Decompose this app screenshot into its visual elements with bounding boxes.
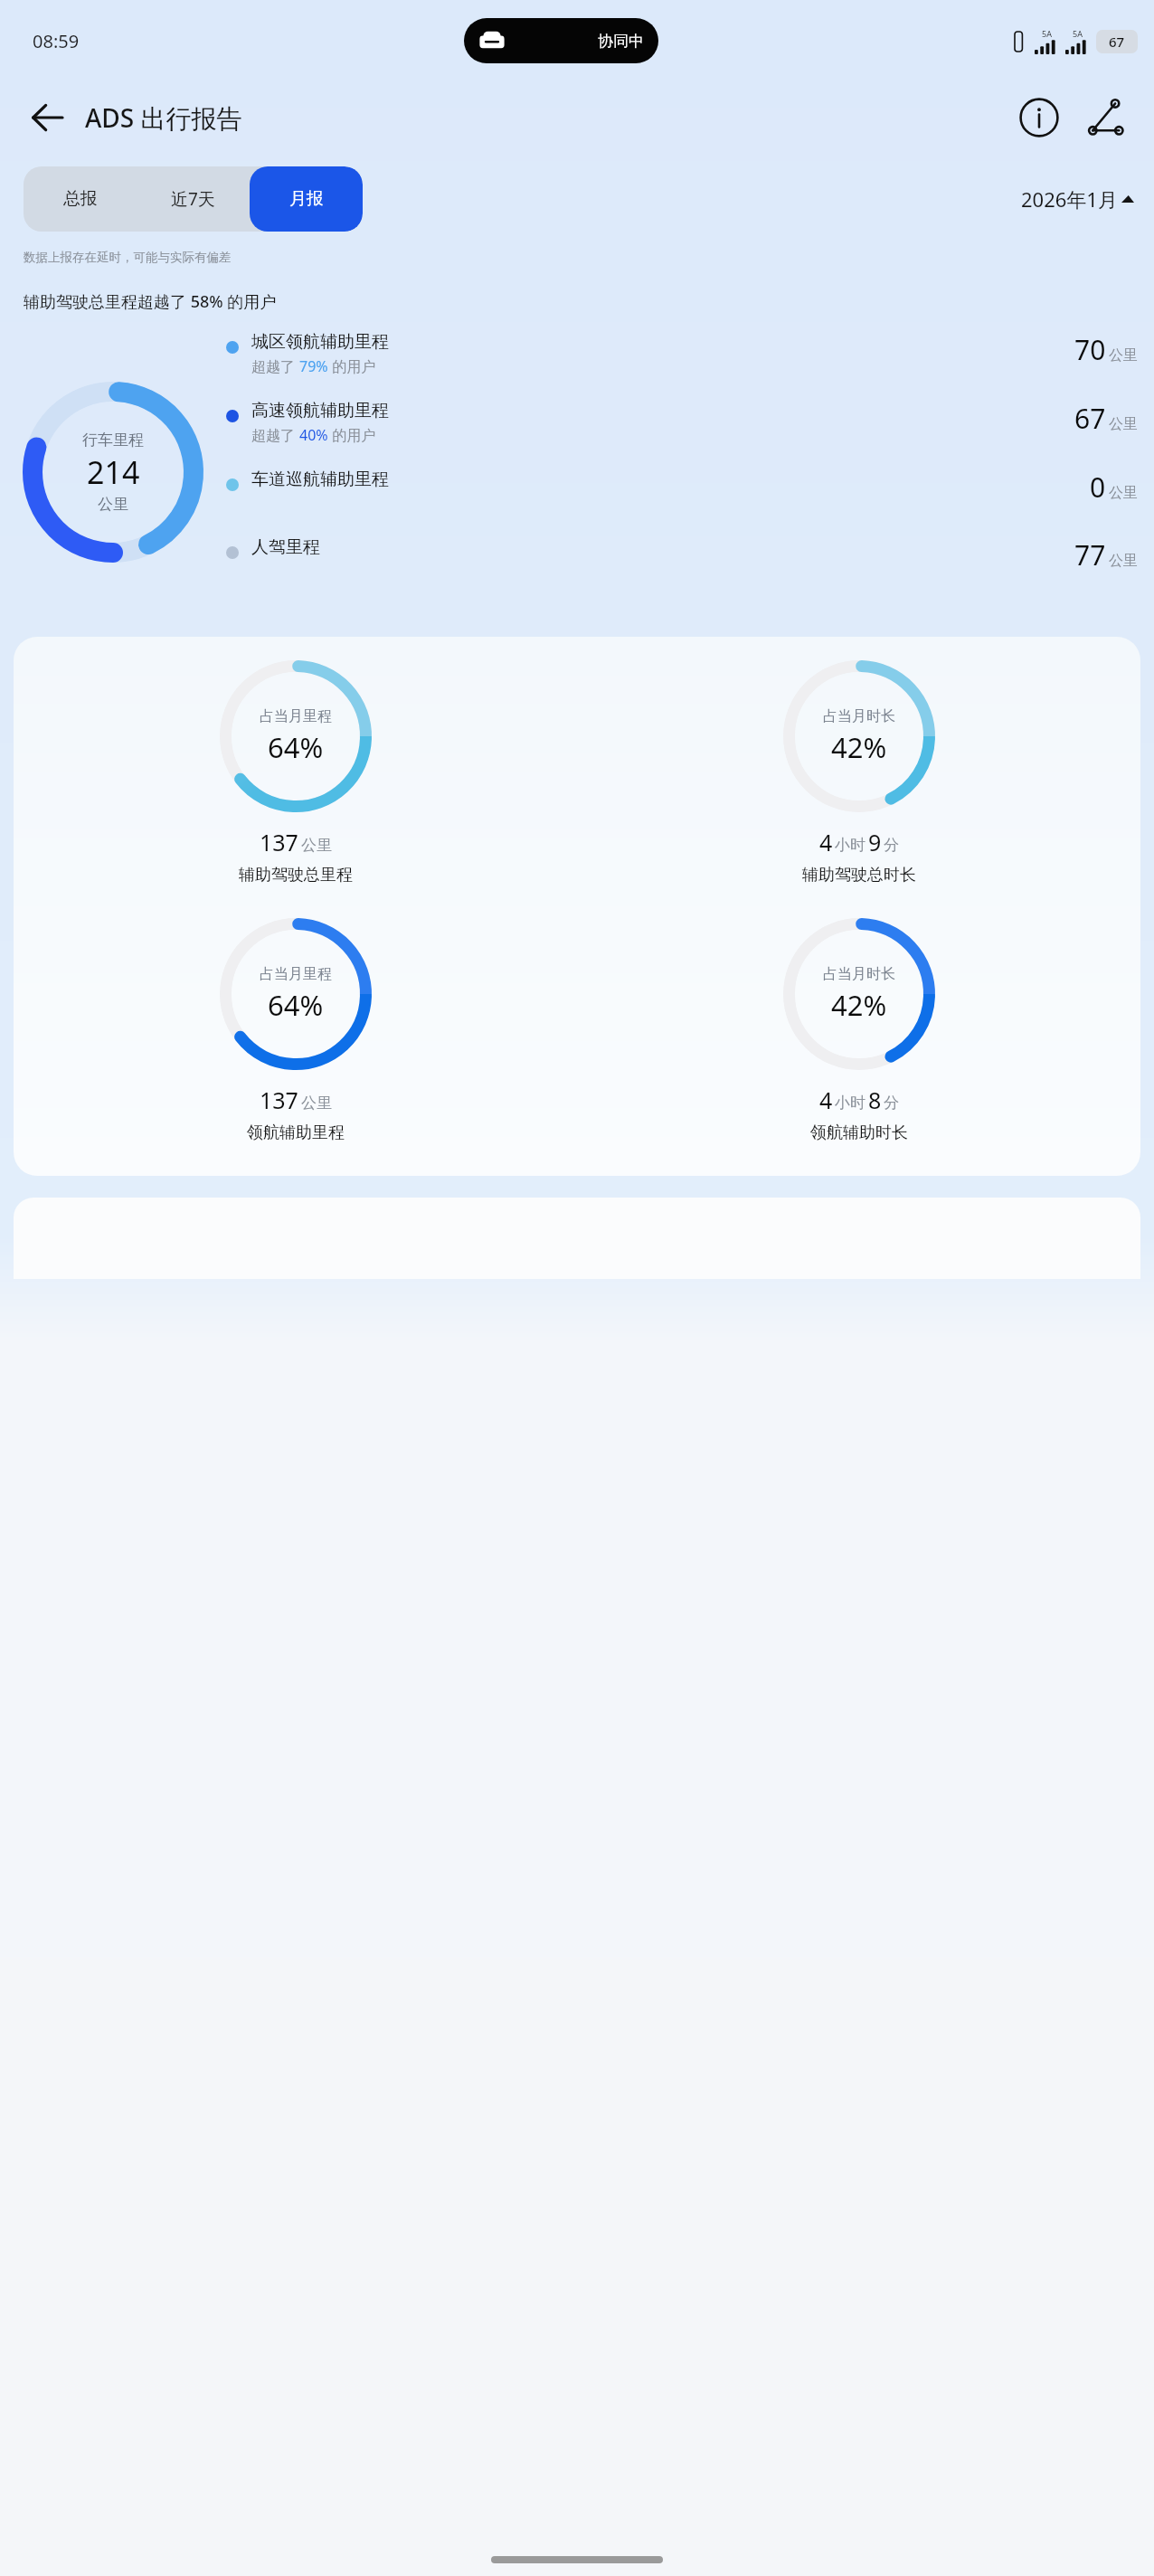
staticText: 车道巡航辅助里程 <box>251 469 389 490</box>
staticText: 占当月时长 <box>823 707 895 725</box>
staticText: 5A <box>1042 28 1052 39</box>
staticText: 77 <box>1074 536 1106 573</box>
staticText: 超越了 <box>251 356 299 376</box>
button[interactable]: 人驾里程 <box>226 536 1138 573</box>
staticText: 公里 <box>1109 346 1138 365</box>
button[interactable]: 月报 <box>250 166 363 232</box>
button[interactable]: 占当月里程 <box>14 918 577 1143</box>
staticText: 4 <box>819 827 833 857</box>
staticText: 数据上报存在延时，可能与实际有偏差 <box>24 250 232 265</box>
button[interactable]: 车道巡航辅助里程 <box>226 469 1138 506</box>
staticText: 67 <box>1109 33 1125 51</box>
button[interactable]: 城区领航辅助里程 <box>226 331 1138 376</box>
staticText: 协同中 <box>598 32 644 51</box>
staticText: 64% <box>268 728 324 766</box>
staticText: 公里 <box>1109 415 1138 433</box>
staticText: 42% <box>831 728 887 766</box>
staticText: 08:59 <box>33 29 80 53</box>
button[interactable]: Info <box>1013 91 1065 144</box>
staticText: 人驾里程 <box>251 536 320 558</box>
staticText: 占当月时长 <box>823 965 895 983</box>
staticText: 占当月里程 <box>260 965 332 983</box>
staticText: 214 <box>87 451 140 493</box>
staticText: 137 <box>260 1084 298 1115</box>
staticText: 城区领航辅助里程 <box>251 331 389 353</box>
button[interactable]: Share <box>1080 91 1132 144</box>
staticText: 辅助驾驶总里程 <box>239 865 353 885</box>
staticText: 公里 <box>1109 484 1138 502</box>
staticText: 超越了 <box>251 425 299 445</box>
staticText: 8 <box>868 1084 882 1115</box>
staticText: 高速领航辅助里程 <box>251 400 389 421</box>
button[interactable]: 占当月时长 <box>577 660 1140 885</box>
staticText: 分 <box>884 836 899 855</box>
staticText: 9 <box>868 827 882 857</box>
staticText: 42% <box>831 986 887 1024</box>
staticText: 64% <box>268 986 324 1024</box>
staticText: 公里 <box>98 495 128 514</box>
staticText: 公里 <box>301 1094 332 1113</box>
staticText: 总报 <box>63 188 98 210</box>
staticText: 公里 <box>1109 552 1138 570</box>
button[interactable]: Back <box>22 92 72 143</box>
staticText: 67 <box>1074 400 1106 437</box>
staticText: 行车里程 <box>82 431 144 450</box>
button[interactable]: 总报 <box>24 166 137 232</box>
staticText: ADS 出行报告 <box>85 100 242 135</box>
staticText: 公里 <box>301 836 332 855</box>
staticText: 辅助驾驶总时长 <box>802 865 916 885</box>
staticText: 0 <box>1090 469 1106 506</box>
staticText: 的用户 <box>328 425 376 445</box>
button[interactable]: 占当月时长 <box>577 918 1140 1143</box>
staticText: 79% <box>299 356 328 376</box>
staticText: 5A <box>1073 28 1083 39</box>
button[interactable]: 高速领航辅助里程 <box>226 400 1138 445</box>
staticText: 137 <box>260 827 298 857</box>
staticText: 小时 <box>835 836 865 855</box>
staticText: 领航辅助时长 <box>810 1122 908 1143</box>
button[interactable]: 2026年1月 <box>1017 182 1138 216</box>
staticText: 小时 <box>835 1094 865 1113</box>
staticText: 的用户 <box>328 356 376 376</box>
staticText: 近7天 <box>171 187 215 211</box>
button[interactable]: 近7天 <box>137 166 250 232</box>
staticText: 4 <box>819 1084 833 1115</box>
staticText: 分 <box>884 1094 899 1113</box>
staticText: 40% <box>299 425 328 445</box>
staticText: 占当月里程 <box>260 707 332 725</box>
staticText: 辅助驾驶总里程超越了 58% 的用户 <box>24 290 277 313</box>
staticText: 月报 <box>289 188 324 210</box>
staticText: 领航辅助里程 <box>247 1122 345 1143</box>
button[interactable]: 占当月里程 <box>14 660 577 885</box>
staticText: 70 <box>1074 331 1106 368</box>
staticText: 2026年1月 <box>1021 185 1118 213</box>
